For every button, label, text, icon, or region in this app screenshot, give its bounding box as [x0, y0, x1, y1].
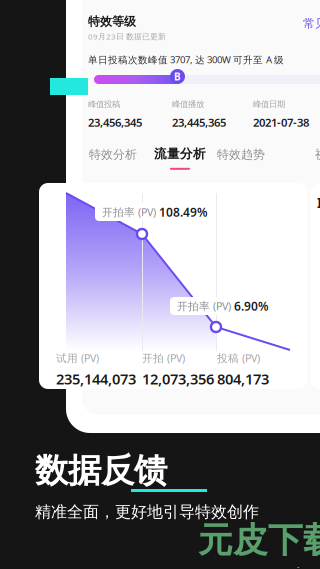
staticText: 235,144,073: [56, 369, 136, 389]
button[interactable]: 常见: [303, 16, 320, 31]
staticText: www.yuanpi.com: [198, 562, 320, 569]
staticText: IO: [317, 194, 320, 212]
staticText: 特效分析: [89, 147, 137, 162]
staticText: 峰值投稿: [88, 99, 120, 110]
button[interactable]: 特效趋势: [217, 147, 265, 170]
button[interactable]: 流量分析: [154, 146, 206, 170]
staticText: 开拍率 (PV): [102, 205, 156, 219]
staticText: 试用 (PV): [56, 351, 99, 365]
staticText: 12,073,356: [142, 369, 214, 389]
button[interactable]: 特效分析: [89, 147, 137, 170]
staticText: B: [174, 70, 181, 83]
staticText: 6.90%: [234, 298, 269, 314]
staticText: 元皮下载: [198, 519, 320, 562]
staticText: 精准全面，更好地引导特效创作: [35, 502, 259, 522]
staticText: 特效趋势: [217, 147, 265, 162]
staticText: 峰值日期: [253, 99, 285, 110]
staticText: 投稿 (PV): [217, 351, 260, 365]
staticText: 23,445,365: [172, 115, 226, 130]
staticText: 常见: [303, 16, 320, 31]
staticText: 峰值播放: [172, 99, 204, 110]
staticText: 视: [315, 147, 320, 162]
staticText: 流量分析: [154, 146, 206, 162]
staticText: 开拍 (PV): [142, 351, 185, 365]
staticText: 数据反馈: [35, 450, 167, 491]
staticText: 108.49%: [159, 204, 208, 220]
staticText: 特效等级: [88, 14, 136, 29]
button[interactable]: 视: [311, 147, 320, 170]
staticText: 开拍率 (PV): [177, 299, 231, 313]
staticText: 2021-07-38: [253, 115, 309, 130]
staticText: 804,173: [217, 369, 269, 389]
staticText: 23,456,345: [88, 115, 142, 130]
staticText: 单日投稿次数峰值 3707, 达 300W 可升至 A 级: [88, 53, 284, 66]
staticText: 09月23日 数据已更新: [88, 31, 166, 42]
